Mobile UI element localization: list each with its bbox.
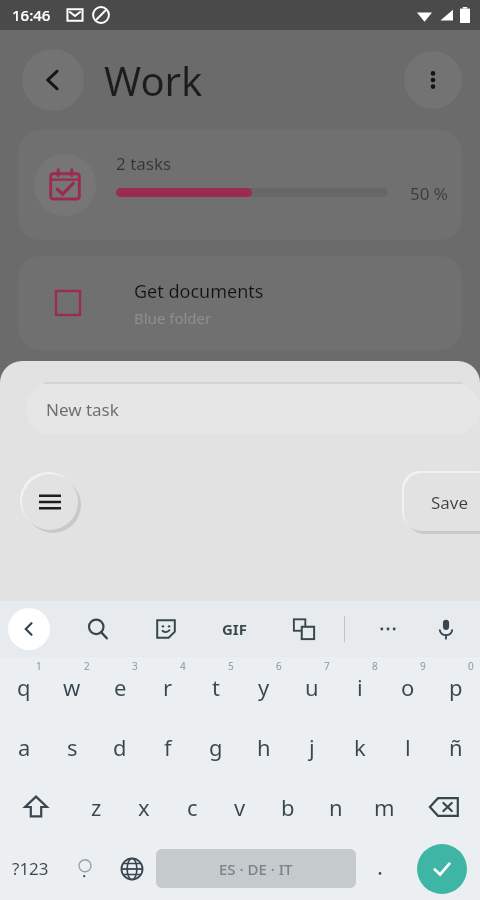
button[interactable]: Save: [404, 473, 480, 531]
button[interactable]: Close toolbar: [8, 608, 50, 650]
staticText: 4: [180, 659, 186, 673]
button[interactable]: c: [168, 777, 216, 837]
button[interactable]: u: [288, 657, 336, 717]
button[interactable]: Search: [76, 607, 120, 651]
staticText: l: [405, 732, 411, 762]
staticText: t: [212, 672, 220, 702]
button[interactable]: x: [120, 777, 168, 837]
staticText: i: [357, 672, 363, 702]
button[interactable]: g: [192, 717, 240, 777]
staticText: ES · DE · IT: [219, 859, 293, 879]
staticText: 9: [420, 659, 426, 673]
staticText: 8: [372, 659, 378, 673]
staticText: 16:46: [12, 5, 51, 25]
button[interactable]: n: [312, 777, 360, 837]
button[interactable]: Change language: [108, 837, 156, 900]
button[interactable]: f: [144, 717, 192, 777]
button[interactable]: w: [48, 657, 96, 717]
button[interactable]: b: [264, 777, 312, 837]
button[interactable]: i: [336, 657, 384, 717]
button[interactable]: k: [336, 717, 384, 777]
staticText: w: [63, 672, 81, 702]
staticText: e: [114, 672, 127, 702]
staticText: b: [281, 792, 295, 822]
staticText: f: [164, 732, 172, 762]
staticText: s: [67, 732, 78, 762]
button[interactable]: v: [216, 777, 264, 837]
button[interactable]: q: [0, 657, 48, 717]
button[interactable]: m: [360, 777, 408, 837]
button[interactable]: d: [96, 717, 144, 777]
staticText: 3: [132, 659, 138, 673]
button[interactable]: s: [48, 717, 96, 777]
button[interactable]: ?123: [0, 837, 61, 900]
button[interactable]: p: [432, 657, 480, 717]
button[interactable]: e: [96, 657, 144, 717]
button[interactable]: z: [72, 777, 120, 837]
staticText: u: [305, 672, 319, 702]
staticText: Blue folder: [134, 308, 212, 328]
button[interactable]: More: [366, 607, 410, 651]
staticText: 5: [228, 659, 234, 673]
staticText: m: [374, 792, 395, 822]
button[interactable]: Enter: [417, 844, 467, 894]
staticText: z: [91, 792, 102, 822]
button[interactable]: Translate: [282, 607, 326, 651]
button[interactable]: Voice input: [424, 607, 468, 651]
staticText: d: [113, 732, 127, 762]
button[interactable]: Stickers: [144, 607, 188, 651]
staticText: Work: [104, 53, 203, 107]
staticText: v: [234, 792, 246, 822]
button[interactable]: Back: [22, 49, 84, 111]
staticText: n: [329, 792, 343, 822]
staticText: 7: [324, 659, 330, 673]
button[interactable]: j: [288, 717, 336, 777]
button[interactable]: [26, 383, 480, 435]
staticText: GIF: [222, 619, 247, 639]
button[interactable]: 2 tasks: [18, 130, 462, 240]
button[interactable]: a: [0, 717, 48, 777]
staticText: Save: [431, 491, 469, 514]
button[interactable]: ñ: [432, 717, 480, 777]
button[interactable]: Menu: [22, 474, 78, 530]
staticText: 0: [468, 659, 474, 673]
staticText: 2: [84, 659, 90, 673]
staticText: 1: [36, 659, 42, 673]
button[interactable]: Backspace: [408, 777, 480, 837]
button[interactable]: More options: [404, 51, 462, 109]
staticText: c: [187, 792, 198, 822]
button[interactable]: l: [384, 717, 432, 777]
staticText: Get documents: [134, 279, 264, 304]
button[interactable]: GIF: [210, 605, 258, 653]
staticText: r: [163, 672, 173, 702]
button[interactable]: [356, 837, 404, 900]
button[interactable]: r: [144, 657, 192, 717]
staticText: 50 %: [410, 182, 448, 205]
staticText: q: [17, 672, 31, 702]
staticText: ?123: [12, 857, 49, 880]
staticText: h: [257, 732, 271, 762]
button[interactable]: y: [240, 657, 288, 717]
staticText: y: [258, 672, 270, 702]
button[interactable]: Shift: [0, 777, 72, 837]
button[interactable]: ES · DE · IT: [156, 849, 356, 888]
staticText: o: [401, 672, 415, 702]
staticText: New task: [46, 398, 119, 421]
staticText: 6: [276, 659, 282, 673]
staticText: x: [138, 792, 150, 822]
staticText: g: [209, 732, 223, 762]
button[interactable]: Emoji: [61, 837, 108, 900]
staticText: a: [18, 732, 31, 762]
staticText: k: [354, 732, 366, 762]
staticText: 2 tasks: [116, 152, 172, 175]
button[interactable]: o: [384, 657, 432, 717]
staticText: j: [309, 732, 315, 762]
staticText: ñ: [449, 732, 463, 762]
staticText: p: [449, 672, 463, 702]
button[interactable]: h: [240, 717, 288, 777]
button[interactable]: Get documents: [18, 256, 462, 350]
button[interactable]: t: [192, 657, 240, 717]
